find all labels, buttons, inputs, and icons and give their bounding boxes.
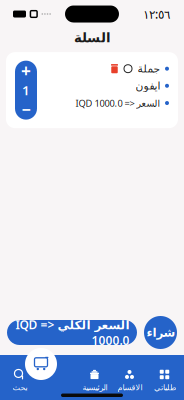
button[interactable]: Cart: [25, 348, 57, 380]
staticText: السعر <= IQD 1000.0: [75, 97, 160, 109]
staticText: ١٢:٥٦: [143, 6, 170, 22]
staticText: الرئيسية: [82, 383, 107, 392]
button[interactable]: شراء: [144, 316, 177, 349]
button[interactable]: طلباتي: [147, 363, 182, 397]
button[interactable]: بحث: [2, 363, 37, 397]
staticText: شراء: [146, 326, 175, 339]
button[interactable]: Select item: [124, 65, 132, 73]
button[interactable]: Delete item: [110, 64, 119, 74]
button[interactable]: السعر الكلي <= IQD 1000.0: [7, 320, 137, 345]
staticText: −: [21, 99, 30, 120]
button[interactable]: Quantity stepper: [15, 61, 37, 120]
staticText: الاقسام: [117, 383, 142, 392]
button[interactable]: الرئيسية: [77, 363, 112, 397]
staticText: جملة: [137, 63, 160, 75]
staticText: 1: [22, 81, 30, 99]
staticText: طلباتي: [153, 383, 175, 392]
staticText: +: [21, 59, 31, 82]
staticText: بحث: [12, 383, 27, 392]
staticText: ايفون: [135, 80, 160, 92]
button[interactable]: الاقسام: [112, 363, 147, 397]
staticText: السعر الكلي <= IQD 1000.0: [15, 317, 129, 348]
staticText: السلة: [73, 30, 110, 45]
